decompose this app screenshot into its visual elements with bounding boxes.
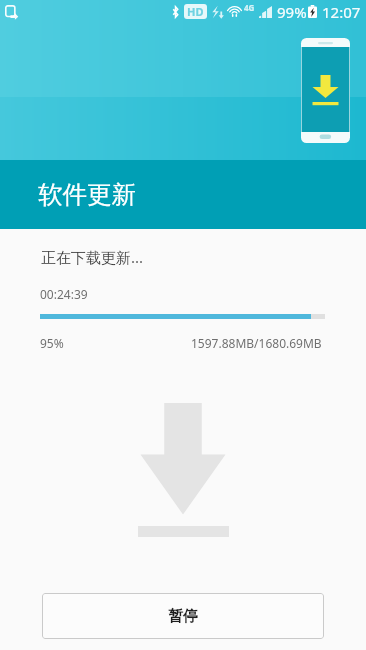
staticText: 暂停 xyxy=(168,607,198,626)
staticText: 95% xyxy=(40,335,64,351)
staticText: 12:07 xyxy=(322,2,361,22)
other: Screenshot xyxy=(5,5,18,19)
button[interactable]: 暂停 xyxy=(42,593,324,639)
staticText: HD xyxy=(187,4,204,19)
staticText: 正在下载更新... xyxy=(41,247,144,267)
staticText: 4G xyxy=(244,2,255,13)
staticText: 99% xyxy=(277,2,307,22)
staticText: 软件更新 xyxy=(38,179,136,210)
staticText: 1597.88MB/1680.69MB xyxy=(191,335,322,351)
staticText: 00:24:39 xyxy=(40,286,88,302)
